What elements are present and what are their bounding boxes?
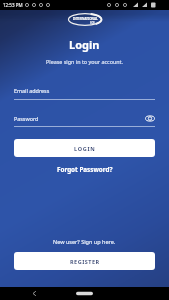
staticText: Login <box>69 37 100 52</box>
staticText: SOS <box>90 21 95 24</box>
button[interactable] <box>0 287 169 300</box>
button[interactable]: New user? Sign up here. <box>53 238 116 245</box>
button[interactable]: Forgot Password? <box>57 165 113 174</box>
button[interactable]: Password <box>14 115 155 127</box>
button[interactable]: LOGIN <box>14 139 155 157</box>
staticText: Please sign in to your account. <box>46 58 123 65</box>
button[interactable]: REGISTER <box>14 252 155 270</box>
staticText: Email address <box>14 87 50 94</box>
staticText: 12:53 PM <box>3 2 23 8</box>
staticText: INTERNATIONAL <box>73 17 98 21</box>
button[interactable]: Email address <box>14 87 155 100</box>
staticText: LOGIN <box>74 145 96 152</box>
staticText: Password <box>14 115 145 122</box>
staticText: REGISTER <box>70 258 100 265</box>
button[interactable] <box>145 115 155 122</box>
